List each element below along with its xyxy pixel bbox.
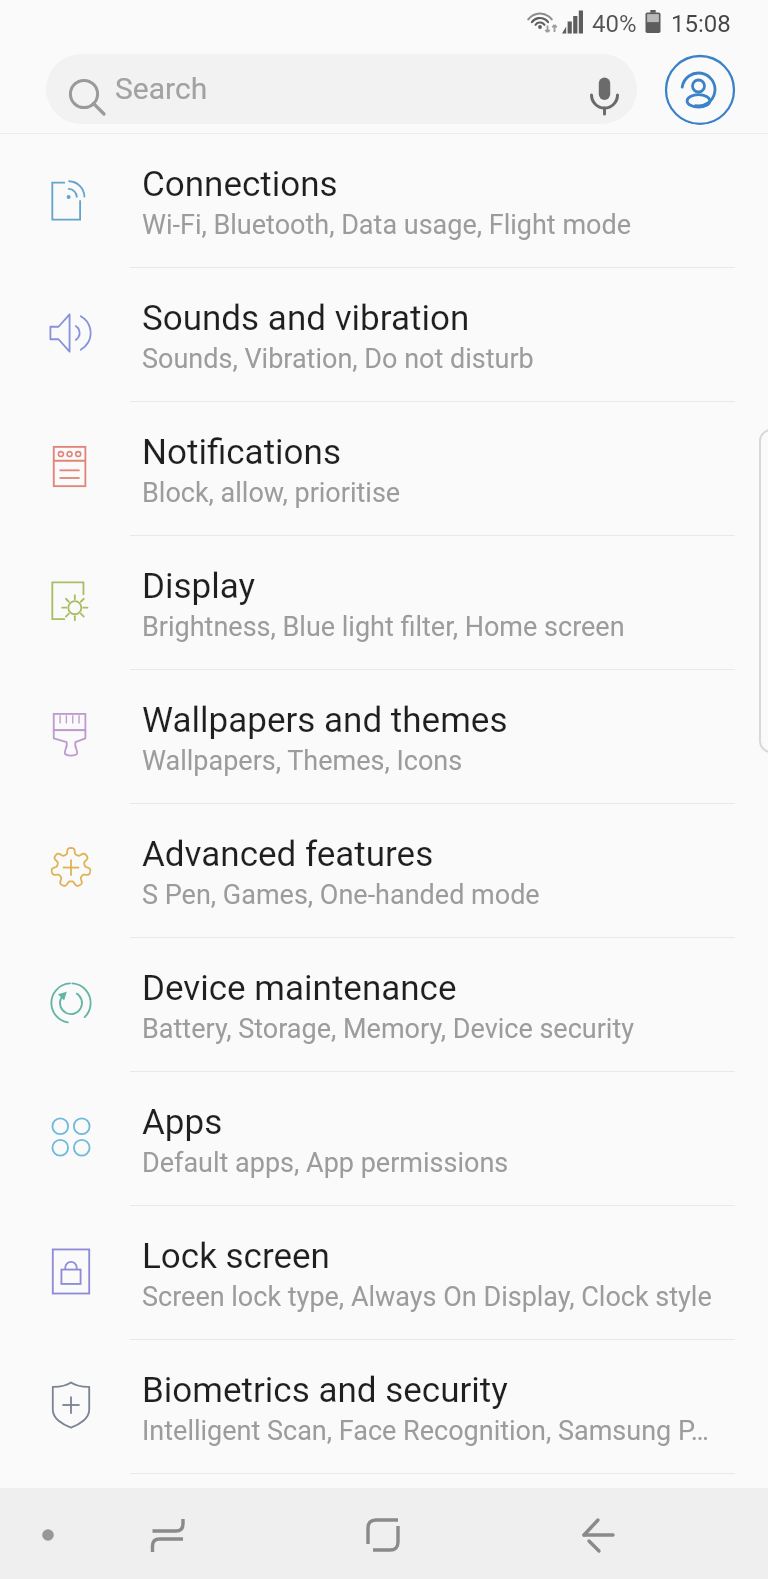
button[interactable]: Advanced features — [0, 804, 768, 938]
staticText: Brightness, Blue light filter, Home scre… — [142, 611, 625, 643]
staticText: Sounds, Vibration, Do not disturb — [142, 343, 534, 375]
button[interactable]: Recent apps — [115, 1488, 219, 1579]
staticText: Search — [115, 71, 208, 106]
button[interactable]: Account — [664, 53, 736, 125]
button[interactable]: Sounds and vibration — [0, 268, 768, 402]
staticText: Wallpapers, Themes, Icons — [142, 745, 463, 777]
button[interactable]: Connections — [0, 134, 768, 268]
staticText: Wi-Fi, Bluetooth, Data usage, Flight mod… — [142, 209, 632, 241]
staticText: Apps — [142, 1102, 223, 1143]
button[interactable]: Biometrics and security — [0, 1340, 768, 1474]
button[interactable]: Home — [335, 1488, 431, 1579]
button[interactable]: Voice search — [571, 54, 637, 124]
button[interactable]: Device maintenance — [0, 938, 768, 1072]
staticText: Battery, Storage, Memory, Device securit… — [142, 1013, 635, 1045]
staticText: S Pen, Games, One-handed mode — [142, 879, 540, 911]
staticText: Wallpapers and themes — [142, 700, 508, 741]
button[interactable] — [46, 54, 637, 124]
staticText: 15:08 — [671, 10, 731, 38]
staticText: Device maintenance — [142, 968, 457, 1009]
staticText: Connections — [142, 164, 338, 205]
staticText: Biometrics and security — [142, 1370, 508, 1411]
staticText: Intelligent Scan, Face Recognition, Sams… — [142, 1415, 709, 1447]
button[interactable]: Menu — [0, 1488, 96, 1579]
button[interactable]: Lock screen — [0, 1206, 768, 1340]
button[interactable]: Display — [0, 536, 768, 670]
staticText: Lock screen — [142, 1236, 330, 1277]
staticText: Screen lock type, Always On Display, Clo… — [142, 1281, 712, 1313]
button[interactable]: Back — [551, 1488, 647, 1579]
staticText: 40% — [592, 10, 637, 38]
button[interactable]: Wallpapers and themes — [0, 670, 768, 804]
staticText: Notifications — [142, 432, 341, 473]
staticText: Sounds and vibration — [142, 298, 470, 339]
staticText: Display — [142, 566, 256, 607]
button[interactable]: Apps — [0, 1072, 768, 1206]
staticText: Advanced features — [142, 834, 434, 875]
staticText: Block, allow, prioritise — [142, 477, 401, 509]
staticText: Default apps, App permissions — [142, 1147, 509, 1179]
button[interactable]: Notifications — [0, 402, 768, 536]
